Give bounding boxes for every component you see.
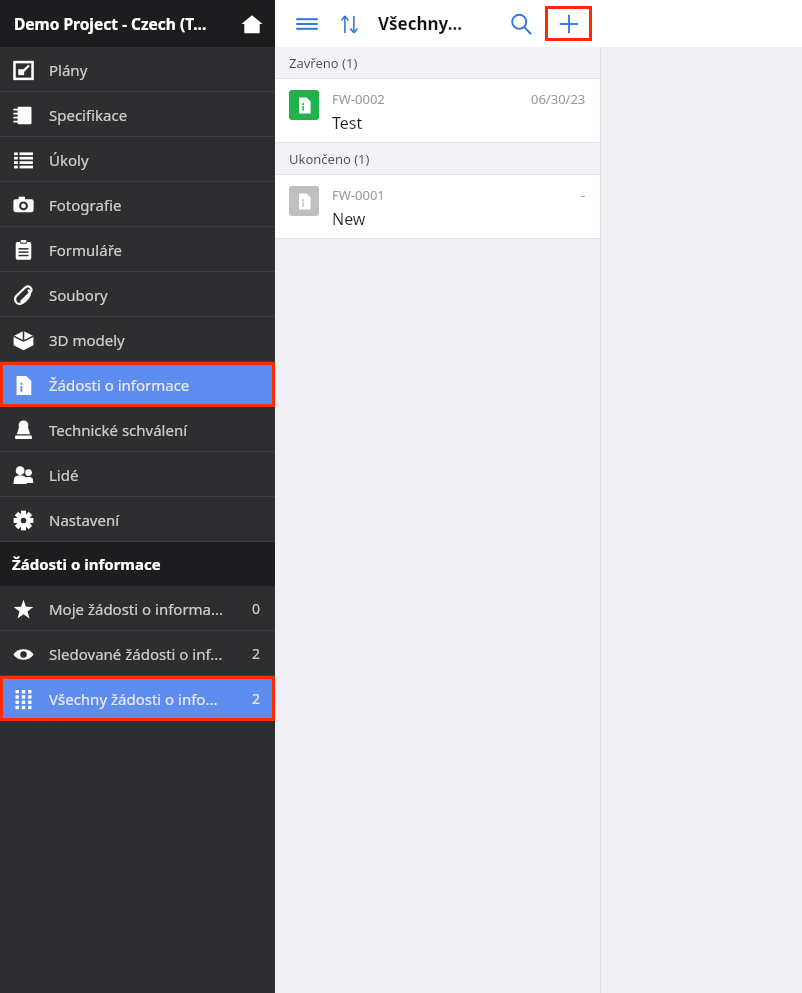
button[interactable]: Sledované žádosti o inf... bbox=[0, 631, 275, 676]
staticText: Soubory bbox=[49, 285, 261, 305]
button[interactable]: Add bbox=[545, 6, 592, 41]
button[interactable]: Plány bbox=[0, 47, 275, 92]
button[interactable]: Fotografie bbox=[0, 182, 275, 227]
button[interactable]: Žádosti o informace bbox=[0, 362, 275, 407]
staticText: 2 bbox=[252, 689, 261, 708]
button[interactable]: Menu bbox=[288, 5, 326, 43]
staticText: 2 bbox=[252, 644, 261, 663]
staticText: Ukončeno (1) bbox=[289, 150, 370, 168]
staticText: - bbox=[581, 186, 586, 204]
staticText: Úkoly bbox=[49, 150, 261, 170]
button[interactable]: FW-0002 bbox=[275, 79, 600, 142]
button[interactable]: Formuláře bbox=[0, 227, 275, 272]
staticText: Technické schválení bbox=[49, 420, 261, 440]
staticText: Plány bbox=[49, 60, 261, 80]
staticText: Specifikace bbox=[49, 105, 261, 125]
staticText: Test bbox=[332, 112, 363, 134]
staticText: 3D modely bbox=[49, 330, 261, 350]
staticText: Žádosti o informace bbox=[12, 554, 161, 574]
staticText: New bbox=[332, 208, 366, 230]
button[interactable]: Demo Project - Czech (T... bbox=[0, 0, 275, 47]
staticText: FW-0001 bbox=[332, 186, 385, 204]
staticText: Lidé bbox=[49, 465, 261, 485]
staticText: Všechny... bbox=[378, 12, 462, 35]
staticText: FW-0002 bbox=[332, 90, 385, 108]
button[interactable]: Technické schválení bbox=[0, 407, 275, 452]
staticText: Zavřeno (1) bbox=[289, 54, 358, 72]
button[interactable]: Nastavení bbox=[0, 497, 275, 542]
button[interactable]: Sort bbox=[330, 5, 368, 43]
button[interactable]: FW-0001 bbox=[275, 175, 600, 238]
button[interactable]: Specifikace bbox=[0, 92, 275, 137]
staticText: Moje žádosti o informa... bbox=[49, 599, 252, 619]
staticText: Všechny žádosti o info... bbox=[49, 689, 252, 709]
button[interactable]: Search bbox=[501, 4, 541, 44]
staticText: Sledované žádosti o inf... bbox=[49, 644, 252, 664]
staticText: Žádosti o informace bbox=[49, 375, 261, 395]
button[interactable]: 3D modely bbox=[0, 317, 275, 362]
staticText: Fotografie bbox=[49, 195, 261, 215]
staticText: 06/30/23 bbox=[531, 90, 586, 108]
button[interactable]: Lidé bbox=[0, 452, 275, 497]
staticText: Nastavení bbox=[49, 510, 261, 530]
button[interactable]: Moje žádosti o informa... bbox=[0, 586, 275, 631]
other: Home bbox=[241, 13, 263, 35]
staticText: 0 bbox=[252, 599, 261, 618]
button[interactable]: Všechny žádosti o info... bbox=[0, 676, 275, 721]
button[interactable]: Úkoly bbox=[0, 137, 275, 182]
staticText: Formuláře bbox=[49, 240, 261, 260]
staticText: Demo Project - Czech (T... bbox=[14, 13, 235, 34]
button[interactable]: Soubory bbox=[0, 272, 275, 317]
